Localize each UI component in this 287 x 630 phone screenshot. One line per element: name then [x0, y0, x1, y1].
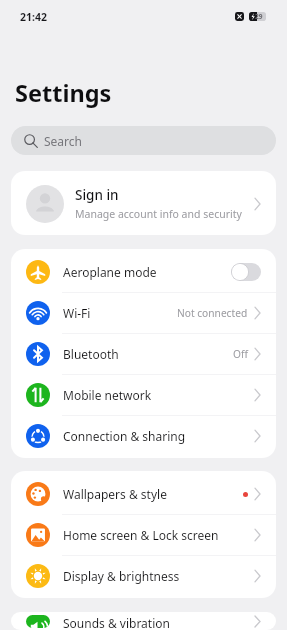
button[interactable]: Home screen & Lock screen [11, 515, 276, 555]
staticText: Sounds & vibration [63, 615, 170, 628]
button[interactable]: Display & brightness [11, 556, 276, 596]
button[interactable]: Bluetooth [11, 334, 276, 374]
button[interactable]: Aeroplane mode toggle [231, 263, 261, 281]
staticText: Bluetooth [63, 346, 119, 362]
staticText: Wallpapers & style [63, 486, 167, 502]
staticText: Not connected [177, 306, 248, 320]
staticText: Search [44, 133, 82, 149]
staticText: Display & brightness [63, 568, 180, 584]
button[interactable]: Mobile network [11, 375, 276, 415]
staticText: Home screen & Lock screen [63, 527, 219, 543]
staticText: Settings [15, 77, 112, 109]
button[interactable]: Search [11, 126, 276, 155]
staticText: Aeroplane mode [63, 264, 157, 280]
staticText: Manage account info and security [75, 207, 242, 221]
staticText: Connection & sharing [63, 428, 186, 444]
staticText: Sign in [75, 186, 119, 204]
staticText: 21:42 [20, 10, 47, 24]
button[interactable]: Sign in [11, 174, 276, 233]
button[interactable]: Sounds & vibration [11, 615, 276, 628]
staticText: Off [233, 347, 248, 361]
staticText: Wi-Fi [63, 305, 91, 321]
button[interactable]: Aeroplane mode [11, 252, 276, 292]
button[interactable]: Wallpapers & style [11, 474, 276, 514]
button[interactable]: Connection & sharing [11, 416, 276, 456]
staticText: 29 [255, 12, 263, 21]
staticText: Mobile network [63, 387, 152, 403]
button[interactable]: Wi-Fi [11, 293, 276, 333]
